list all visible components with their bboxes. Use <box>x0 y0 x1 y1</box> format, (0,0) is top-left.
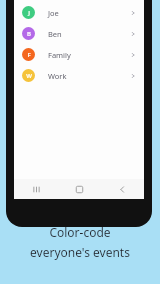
staticText: J <box>28 9 30 17</box>
staticText: Work <box>48 71 67 81</box>
staticText: Family <box>48 50 71 60</box>
staticText: F <box>27 51 31 59</box>
staticText: Ben <box>48 29 62 39</box>
button[interactable]: B <box>14 23 144 44</box>
button[interactable]: J <box>14 2 144 23</box>
staticText: B <box>27 30 31 38</box>
button[interactable]: F <box>14 44 144 65</box>
staticText: everyone's events <box>30 244 130 260</box>
staticText: Joe <box>48 8 59 18</box>
staticText: W <box>26 72 32 80</box>
button[interactable]: Home <box>58 179 101 199</box>
button[interactable]: Back <box>101 179 144 199</box>
button[interactable]: W <box>14 65 144 86</box>
staticText: Color-code <box>49 224 111 240</box>
button[interactable]: Recents <box>14 179 58 199</box>
